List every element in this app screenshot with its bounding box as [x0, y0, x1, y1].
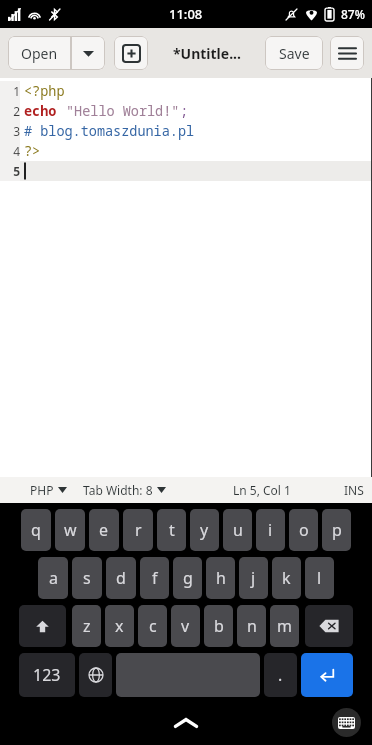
staticText: x — [115, 615, 124, 637]
button[interactable]: PHP — [30, 482, 67, 498]
button[interactable]: n — [237, 605, 266, 647]
staticText: INS — [344, 482, 364, 498]
button[interactable]: t — [157, 509, 186, 551]
staticText: 1 — [13, 83, 20, 99]
button[interactable]: a — [38, 557, 68, 599]
staticText: c — [149, 615, 157, 637]
button[interactable]: p — [322, 509, 351, 551]
button[interactable]: f — [140, 557, 169, 599]
button[interactable]: e — [89, 509, 119, 551]
button[interactable]: l — [305, 557, 334, 599]
staticText: e — [99, 519, 109, 541]
staticText: m — [277, 615, 292, 637]
button[interactable]: d — [106, 557, 136, 599]
staticText: PHP — [30, 482, 54, 498]
button[interactable]: Open recent files — [71, 36, 105, 70]
button[interactable]: y — [190, 509, 219, 551]
button[interactable]: Open — [8, 36, 71, 70]
button[interactable]: u — [223, 509, 252, 551]
button[interactable]: i — [256, 509, 285, 551]
staticText: 11:08 — [169, 5, 203, 23]
button[interactable]: g — [173, 557, 202, 599]
staticText: u — [233, 519, 243, 541]
button[interactable]: 123 — [19, 653, 75, 697]
staticText: 3 — [13, 123, 20, 139]
button[interactable]: o — [289, 509, 318, 551]
staticText: i — [268, 519, 273, 541]
button[interactable]: j — [239, 557, 268, 599]
staticText: <?php — [24, 82, 65, 100]
staticText: a — [49, 567, 58, 589]
button[interactable]: Tab Width: 8 — [83, 482, 166, 498]
staticText: y — [200, 519, 209, 541]
staticText: l — [317, 567, 322, 589]
button[interactable]: s — [72, 557, 102, 599]
staticText: Save — [279, 44, 310, 63]
staticText: 4 — [13, 143, 20, 159]
button[interactable]: Menu — [330, 36, 364, 70]
button[interactable]: Backspace — [305, 605, 353, 647]
button[interactable]: z — [72, 605, 101, 647]
staticText: 2 — [13, 103, 20, 119]
staticText: w — [64, 519, 77, 541]
staticText: f — [152, 567, 158, 589]
staticText: g — [183, 567, 193, 589]
button[interactable]: m — [270, 605, 299, 647]
staticText: . — [278, 664, 283, 686]
button[interactable]: New file — [114, 36, 148, 70]
button[interactable]: Switch input method — [332, 708, 361, 737]
staticText: h — [216, 567, 226, 589]
staticText: q — [31, 519, 41, 541]
button[interactable]: v — [171, 605, 200, 647]
staticText: j — [251, 567, 256, 589]
staticText: # blog.tomaszdunia.pl — [24, 122, 195, 140]
button[interactable]: c — [138, 605, 167, 647]
staticText: p — [332, 519, 342, 541]
staticText: "Hello World!" — [66, 102, 180, 120]
staticText: k — [282, 567, 291, 589]
staticText: v — [181, 615, 190, 637]
staticText: s — [83, 567, 91, 589]
button[interactable]: b — [204, 605, 233, 647]
staticText: n — [247, 615, 257, 637]
button[interactable]: Change keyboard language — [79, 653, 112, 697]
button[interactable]: q — [21, 509, 51, 551]
button[interactable]: Shift — [19, 605, 66, 647]
button[interactable]: x — [105, 605, 134, 647]
staticText: 5 — [13, 163, 20, 179]
button[interactable]: . — [264, 653, 297, 697]
button[interactable]: Hide keyboard — [159, 703, 213, 743]
staticText: echo — [24, 102, 57, 120]
staticText: *Untitle... — [173, 44, 241, 63]
button[interactable]: Save — [265, 36, 323, 70]
staticText: Ln 5, Col 1 — [233, 482, 291, 498]
button[interactable]: Enter — [301, 653, 353, 697]
staticText: t — [169, 519, 175, 541]
staticText: ?> — [24, 142, 41, 160]
staticText: d — [116, 567, 126, 589]
button[interactable]: k — [272, 557, 301, 599]
button[interactable]: h — [206, 557, 235, 599]
staticText: b — [214, 615, 224, 637]
staticText: z — [83, 615, 91, 637]
staticText: ; — [180, 102, 189, 120]
staticText: 123 — [33, 664, 61, 686]
button[interactable]: Space — [116, 653, 260, 697]
staticText: 87% — [341, 6, 365, 22]
button[interactable]: w — [55, 509, 85, 551]
staticText: r — [135, 519, 142, 541]
staticText: Open — [21, 44, 58, 63]
staticText: Tab Width: 8 — [83, 482, 153, 498]
button[interactable]: r — [123, 509, 153, 551]
staticText: o — [299, 519, 309, 541]
